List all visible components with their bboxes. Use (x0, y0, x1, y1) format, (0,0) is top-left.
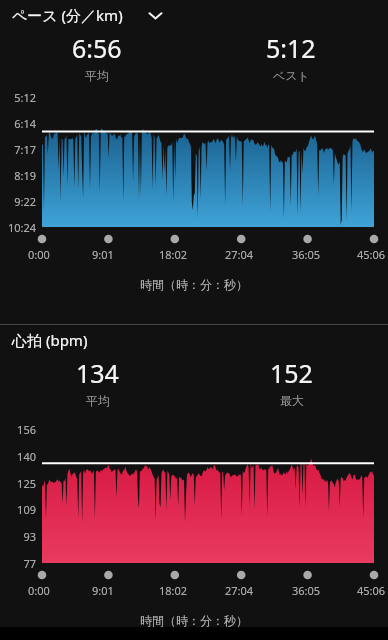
staticText: 8:19 (14, 168, 36, 183)
staticText: 心拍 (bpm) (12, 330, 88, 350)
staticText: 0:00 (28, 583, 50, 598)
staticText: 125 (17, 476, 36, 491)
staticText: 134 (76, 356, 119, 390)
staticText: 平均 (85, 68, 109, 83)
button[interactable]: Change metric (143, 3, 167, 27)
staticText: 45:06 (357, 583, 386, 598)
staticText: 時間（時：分：秒） (140, 613, 248, 628)
staticText: 93 (23, 529, 36, 544)
staticText: 9:01 (92, 247, 114, 262)
staticText: ベスト (273, 68, 310, 83)
staticText: 18:02 (159, 583, 188, 598)
button[interactable]: 心拍 (bpm) (0, 325, 388, 355)
staticText: 156 (17, 422, 36, 437)
staticText: 時間（時：分：秒） (140, 277, 248, 292)
staticText: ペース (分／km) (12, 5, 123, 25)
staticText: 9:01 (92, 583, 114, 598)
staticText: 109 (17, 502, 36, 517)
button[interactable]: ペース (分／km) (0, 0, 388, 30)
staticText: 140 (17, 449, 36, 464)
staticText: 6:56 (72, 31, 122, 65)
staticText: 5:12 (14, 90, 36, 105)
staticText: 152 (270, 356, 313, 390)
staticText: 9:22 (14, 194, 36, 209)
staticText: 77 (23, 556, 36, 571)
staticText: 27:04 (225, 247, 254, 262)
staticText: 27:04 (225, 583, 254, 598)
staticText: 45:06 (357, 247, 386, 262)
staticText: 最大 (280, 393, 304, 408)
staticText: 平均 (86, 393, 110, 408)
staticText: 6:14 (14, 116, 36, 131)
staticText: 36:05 (292, 583, 321, 598)
staticText: 0:00 (28, 247, 50, 262)
staticText: 7:17 (14, 142, 36, 157)
staticText: 36:05 (292, 247, 321, 262)
staticText: 10:24 (7, 220, 36, 235)
staticText: 5:12 (266, 31, 316, 65)
staticText: 18:02 (159, 247, 188, 262)
